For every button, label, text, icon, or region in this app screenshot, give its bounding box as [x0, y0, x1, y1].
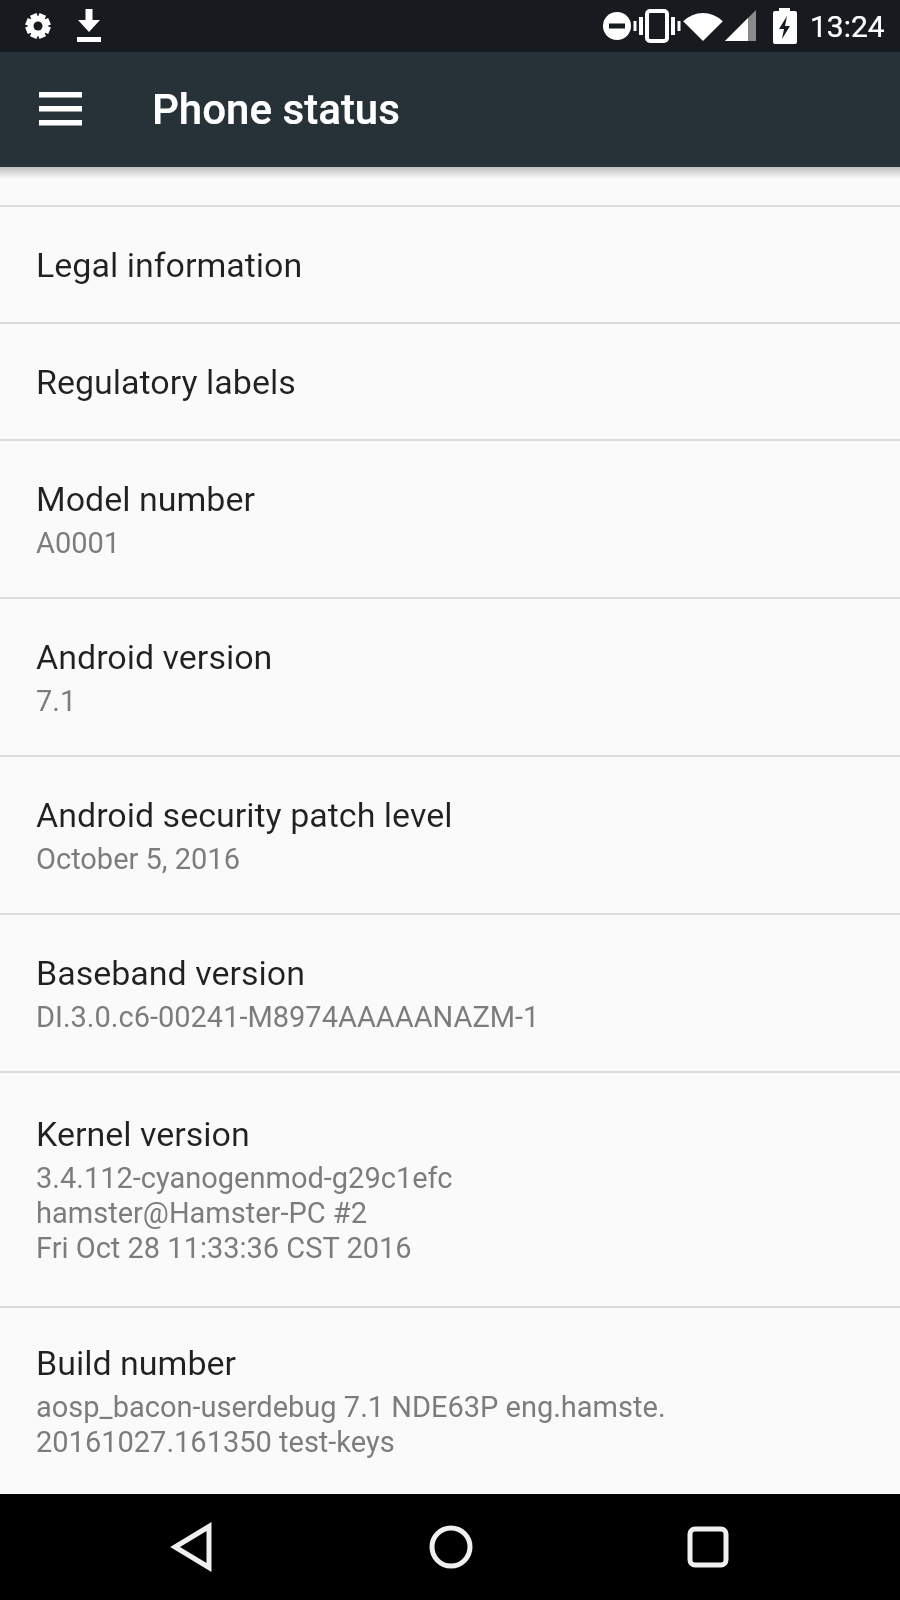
staticText: Baseband version — [36, 953, 306, 993]
staticText: A0001 — [36, 526, 121, 560]
button[interactable] — [64, 1494, 322, 1600]
button[interactable] — [322, 1494, 579, 1600]
staticText: Model number — [36, 479, 255, 519]
staticText: Android security patch level — [36, 795, 453, 835]
staticText: Kernel version — [36, 1114, 250, 1154]
staticText: Regulatory labels — [36, 362, 296, 402]
staticText: Build number — [36, 1343, 237, 1383]
staticText: Legal information — [36, 245, 303, 285]
button[interactable]: Baseband version — [0, 915, 900, 1071]
staticText: Phone status — [152, 85, 400, 134]
button[interactable]: Kernel version — [0, 1073, 900, 1306]
button[interactable]: Regulatory labels — [0, 324, 900, 439]
button[interactable]: Android version — [0, 599, 900, 755]
staticText: 3.4.112-cyanogenmod-g29c1efc hamster@Ham… — [36, 1161, 453, 1265]
staticText: October 5, 2016 — [36, 842, 240, 876]
staticText: aosp_bacon-userdebug 7.1 NDE63P eng.hams… — [36, 1390, 666, 1459]
button[interactable]: Model number — [0, 441, 900, 597]
staticText: Android version — [36, 637, 273, 677]
button[interactable] — [0, 167, 900, 205]
staticText: 7.1 — [36, 684, 77, 718]
button[interactable]: Android security patch level — [0, 757, 900, 913]
staticText: 13:24 — [810, 9, 885, 44]
button[interactable]: Legal information — [0, 207, 900, 322]
button[interactable]: Build number — [0, 1308, 900, 1494]
button[interactable] — [579, 1494, 836, 1600]
staticText: DI.3.0.c6-00241-M8974AAAAANAZM-1 — [36, 1000, 540, 1034]
button[interactable] — [24, 74, 96, 146]
